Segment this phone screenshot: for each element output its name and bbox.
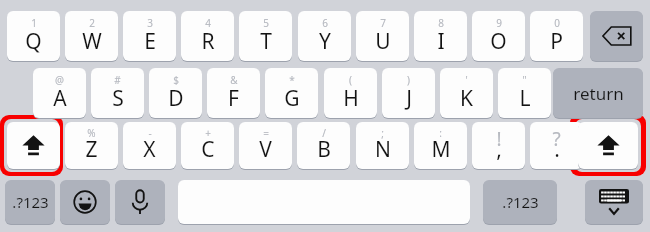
button[interactable]: ) bbox=[382, 68, 435, 118]
button[interactable]: " bbox=[498, 68, 551, 118]
button[interactable]: Delete bbox=[590, 11, 643, 61]
staticText: X bbox=[143, 135, 156, 164]
staticText: F bbox=[228, 84, 239, 113]
button[interactable]: 5 bbox=[239, 11, 292, 61]
staticText: " bbox=[522, 73, 527, 87]
button[interactable]: 2 bbox=[65, 11, 118, 61]
staticText: I bbox=[437, 27, 445, 56]
button[interactable]: = bbox=[239, 122, 292, 169]
button[interactable]: Hide keyboard bbox=[585, 180, 643, 224]
staticText: W bbox=[82, 27, 102, 56]
staticText: 7 bbox=[380, 16, 386, 30]
staticText: 5 bbox=[263, 16, 269, 30]
button[interactable]: - bbox=[123, 122, 176, 169]
staticText: Z bbox=[85, 135, 98, 164]
staticText: % bbox=[87, 126, 96, 140]
staticText: N bbox=[375, 135, 391, 164]
staticText: # bbox=[114, 73, 121, 87]
staticText: / bbox=[322, 126, 326, 140]
staticText: 1 bbox=[31, 16, 37, 30]
staticText: K bbox=[460, 84, 473, 113]
staticText: S bbox=[112, 84, 124, 113]
button[interactable]: # bbox=[91, 68, 144, 118]
staticText: V bbox=[259, 135, 272, 164]
staticText: 0 bbox=[554, 16, 560, 30]
staticText: R bbox=[201, 27, 215, 56]
button[interactable]: Shift bbox=[7, 122, 60, 169]
staticText: $ bbox=[173, 73, 179, 87]
button[interactable]: 9 bbox=[472, 11, 525, 61]
staticText: O bbox=[490, 27, 507, 56]
button[interactable]: Emoji bbox=[60, 180, 110, 224]
button[interactable]: @ bbox=[33, 68, 86, 118]
button[interactable]: : bbox=[414, 122, 467, 169]
staticText: 8 bbox=[438, 16, 444, 30]
staticText: C bbox=[201, 135, 215, 164]
staticText: Y bbox=[319, 27, 331, 56]
staticText: 4 bbox=[205, 16, 211, 30]
button[interactable]: return bbox=[553, 68, 643, 118]
button[interactable]: $ bbox=[149, 68, 202, 118]
staticText: + bbox=[205, 126, 211, 140]
button[interactable]: 8 bbox=[414, 11, 467, 61]
button[interactable]: 3 bbox=[123, 11, 176, 61]
button[interactable]: 7 bbox=[356, 11, 409, 61]
button[interactable]: Shift bbox=[578, 122, 638, 169]
staticText: L bbox=[519, 84, 531, 113]
button[interactable]: & bbox=[207, 68, 260, 118]
button[interactable]: + bbox=[181, 122, 234, 169]
staticText: & bbox=[230, 73, 238, 87]
staticText: G bbox=[284, 84, 300, 113]
staticText: D bbox=[168, 84, 184, 113]
staticText: - bbox=[148, 126, 152, 140]
button[interactable]: / bbox=[297, 122, 350, 169]
staticText: ? bbox=[552, 126, 561, 152]
staticText: 3 bbox=[147, 16, 153, 30]
staticText: ; bbox=[381, 126, 384, 140]
staticText: B bbox=[317, 135, 331, 164]
button[interactable]: .?123 bbox=[483, 180, 557, 224]
staticText: , bbox=[496, 135, 502, 164]
button[interactable]: 0 bbox=[530, 11, 583, 61]
staticText: A bbox=[53, 84, 67, 113]
staticText: H bbox=[343, 84, 359, 113]
button[interactable]: * bbox=[265, 68, 318, 118]
staticText: * bbox=[289, 73, 295, 87]
staticText: = bbox=[263, 126, 269, 140]
staticText: T bbox=[260, 27, 272, 56]
staticText: Q bbox=[25, 27, 42, 56]
button[interactable]: ' bbox=[440, 68, 493, 118]
staticText: M bbox=[431, 135, 451, 164]
staticText: .?123 bbox=[502, 192, 539, 212]
staticText: 2 bbox=[89, 16, 95, 30]
button[interactable]: % bbox=[65, 122, 118, 169]
button[interactable]: ( bbox=[324, 68, 377, 118]
staticText: .?123 bbox=[12, 192, 49, 212]
button[interactable]: 4 bbox=[181, 11, 234, 61]
staticText: ) bbox=[407, 73, 410, 87]
staticText: 9 bbox=[496, 16, 502, 30]
button[interactable]: 6 bbox=[298, 11, 351, 61]
staticText: J bbox=[406, 84, 412, 113]
button[interactable]: ! bbox=[472, 122, 525, 169]
staticText: ' bbox=[465, 73, 468, 87]
staticText: ! bbox=[496, 126, 502, 152]
button[interactable]: ; bbox=[356, 122, 409, 169]
staticText: E bbox=[144, 27, 156, 56]
button[interactable]: Dictation bbox=[115, 180, 165, 224]
staticText: return bbox=[573, 82, 624, 105]
staticText: U bbox=[375, 27, 391, 56]
staticText: P bbox=[550, 27, 563, 56]
staticText: @ bbox=[55, 73, 64, 87]
staticText: ( bbox=[349, 73, 352, 87]
button[interactable]: 1 bbox=[7, 11, 60, 61]
button[interactable]: ? bbox=[530, 122, 583, 169]
button[interactable]: .?123 bbox=[5, 180, 55, 224]
staticText: . bbox=[554, 135, 560, 164]
staticText: 6 bbox=[322, 16, 328, 30]
staticText: : bbox=[439, 126, 442, 140]
